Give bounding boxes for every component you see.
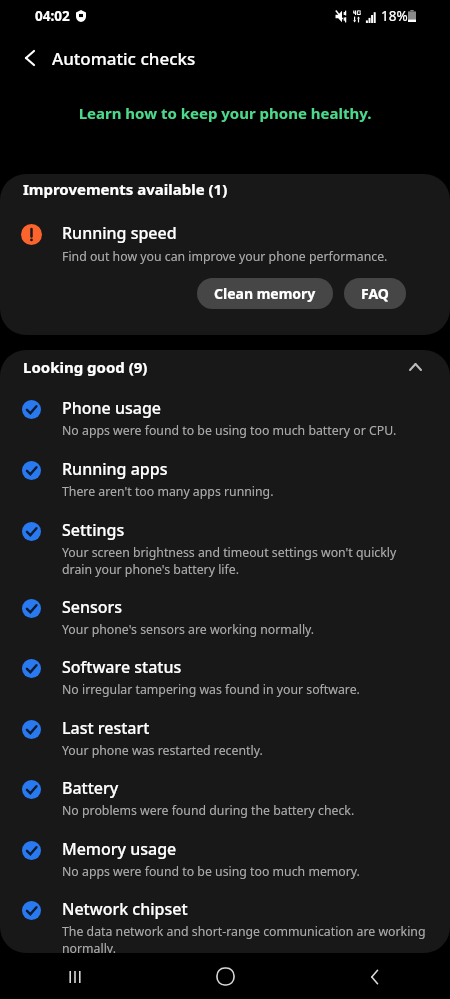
- staticText: Phone usage: [62, 397, 162, 419]
- staticText: 18%: [381, 7, 408, 25]
- button[interactable]: Running apps: [0, 458, 450, 500]
- staticText: Battery: [62, 777, 119, 799]
- staticText: Running apps: [62, 458, 168, 480]
- staticText: Memory usage: [62, 838, 177, 860]
- button[interactable]: Phone usage: [0, 397, 450, 439]
- button[interactable]: Network chipset: [0, 898, 450, 953]
- button[interactable]: Battery: [0, 777, 450, 819]
- button[interactable]: Settings: [0, 519, 450, 577]
- staticText: Improvements available (1): [23, 179, 228, 199]
- button[interactable]: Navigate up: [0, 34, 52, 82]
- staticText: Looking good (9): [23, 357, 380, 377]
- staticText: Software status: [62, 656, 182, 678]
- staticText: The data network and short-range communi…: [62, 923, 427, 953]
- staticText: Clean memory: [214, 284, 316, 303]
- staticText: No apps were found to be using too much …: [62, 422, 397, 439]
- button[interactable]: Looking good (9): [0, 350, 450, 383]
- button[interactable]: Recent apps: [0, 954, 150, 999]
- staticText: 04:02: [35, 7, 70, 25]
- button[interactable]: Memory usage: [0, 838, 450, 880]
- button[interactable]: Sensors: [0, 596, 450, 638]
- button[interactable]: Learn how to keep your phone healthy.: [0, 103, 450, 123]
- staticText: No apps were found to be using too much …: [62, 863, 360, 880]
- button[interactable]: Last restart: [0, 717, 450, 759]
- staticText: No problems were found during the batter…: [62, 802, 355, 819]
- button[interactable]: Home: [150, 954, 300, 999]
- staticText: There aren't too many apps running.: [62, 483, 274, 500]
- staticText: Find out how you can improve your phone …: [62, 248, 388, 265]
- button[interactable]: Back: [300, 954, 450, 999]
- staticText: No irregular tampering was found in your…: [62, 681, 360, 698]
- staticText: Network chipset: [62, 898, 188, 920]
- staticText: Running speed: [62, 222, 177, 244]
- staticText: Automatic checks: [52, 47, 196, 70]
- staticText: Your screen brightness and timeout setti…: [62, 544, 427, 577]
- staticText: Settings: [62, 519, 125, 541]
- staticText: Your phone was restarted recently.: [62, 742, 263, 759]
- staticText: FAQ: [361, 284, 389, 303]
- staticText: Last restart: [62, 717, 150, 739]
- button[interactable]: FAQ: [344, 278, 406, 309]
- button[interactable]: Clean memory: [197, 278, 333, 309]
- staticText: Sensors: [62, 596, 123, 618]
- button[interactable]: Software status: [0, 656, 450, 698]
- staticText: Your phone's sensors are working normall…: [62, 621, 315, 638]
